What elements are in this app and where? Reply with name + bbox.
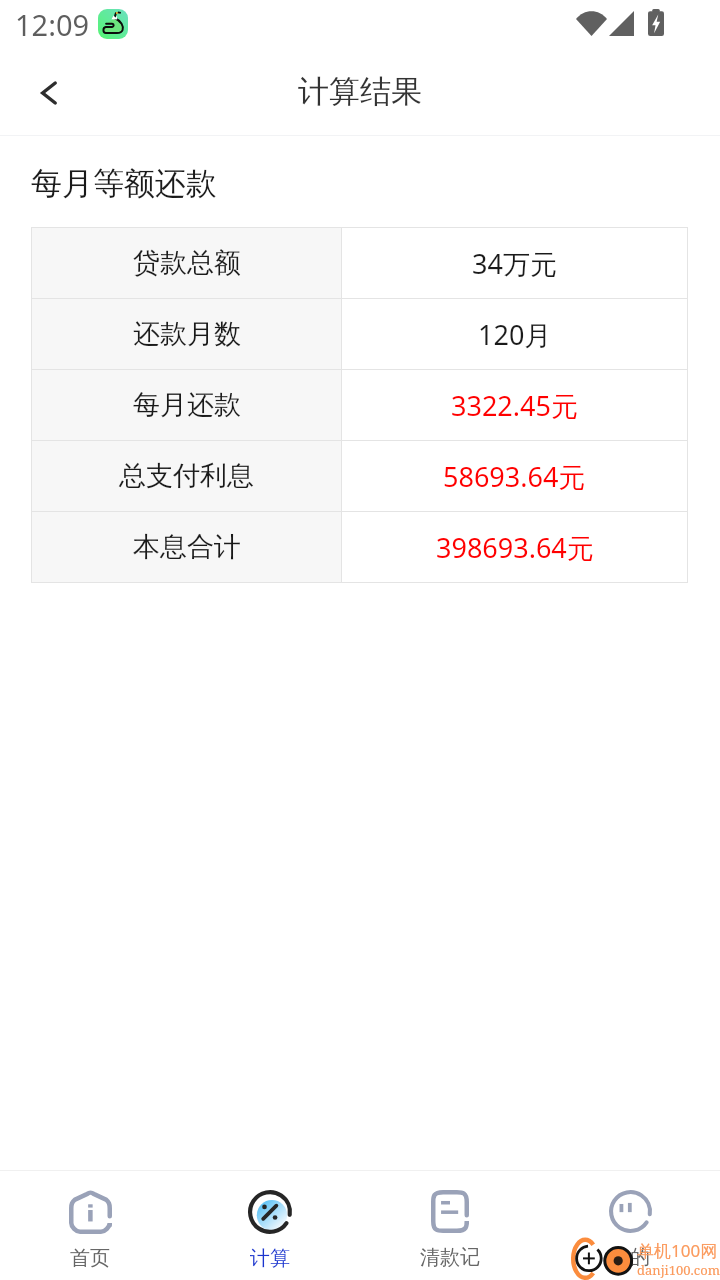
button[interactable]: Profile [540, 1171, 720, 1280]
staticText: 计算结果 [298, 72, 422, 111]
staticText: 120月 [478, 316, 552, 353]
button[interactable]: Home [0, 1171, 180, 1280]
staticText: 58693.64元 [443, 458, 586, 495]
staticText: 398693.64元 [436, 529, 594, 566]
staticText: 34万元 [472, 245, 557, 282]
staticText: danji100.com [637, 1261, 720, 1279]
staticText: 首页 [70, 1246, 110, 1271]
staticText: 本息合计 [133, 530, 241, 564]
staticText: 清款记 [420, 1245, 480, 1270]
button[interactable]: Back [21, 65, 77, 121]
staticText: 贷款总额 [133, 246, 241, 280]
button[interactable]: Records [360, 1171, 540, 1280]
staticText: 我的 [610, 1245, 650, 1270]
staticText: 单机100网 [637, 1239, 718, 1262]
staticText: 3322.45元 [451, 387, 578, 424]
staticText: 还款月数 [133, 317, 241, 351]
staticText: 计算 [250, 1246, 290, 1271]
staticText: 每月还款 [133, 388, 241, 422]
staticText: 总支付利息 [119, 459, 254, 493]
button[interactable]: Calculate [180, 1171, 360, 1280]
staticText: 每月等额还款 [31, 164, 217, 203]
staticText: 12:09 [15, 5, 90, 44]
